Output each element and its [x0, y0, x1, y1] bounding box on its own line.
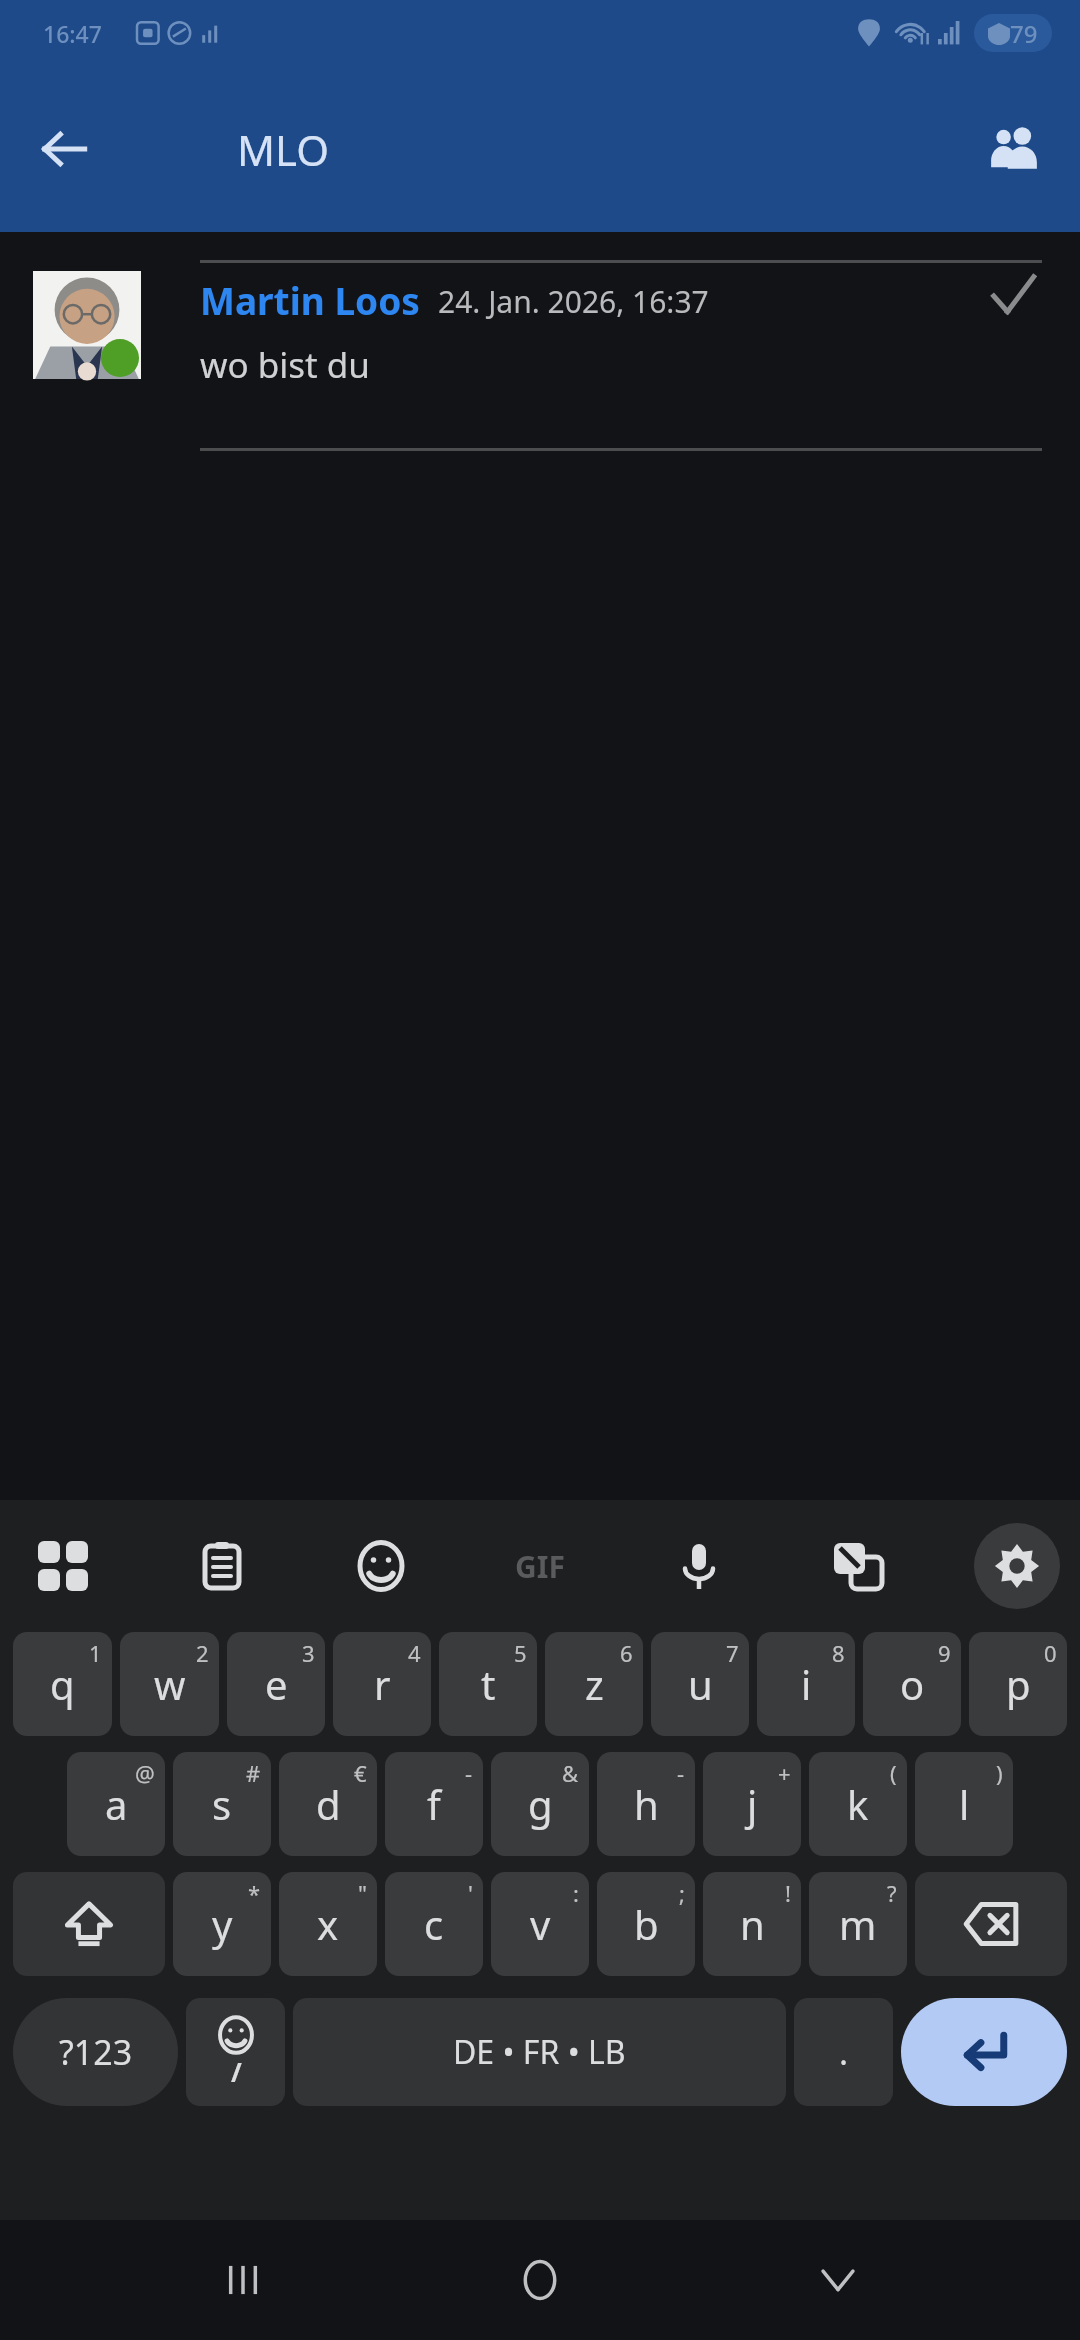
- button[interactable]: Voice input: [656, 1523, 742, 1609]
- staticText: x: [317, 1897, 339, 1951]
- staticText: 2: [196, 1638, 209, 1668]
- staticText: h: [634, 1777, 659, 1831]
- button[interactable]: v: [491, 1872, 589, 1976]
- staticText: 4: [408, 1638, 421, 1668]
- button[interactable]: a: [67, 1752, 165, 1856]
- button[interactable]: o: [863, 1632, 961, 1736]
- button[interactable]: h: [597, 1752, 695, 1856]
- staticText: ": [358, 1878, 367, 1908]
- button[interactable]: [33, 271, 141, 379]
- staticText: 24. Jan. 2026, 16:37: [438, 281, 709, 322]
- staticText: n: [740, 1897, 765, 1951]
- button[interactable]: ?123: [13, 1998, 178, 2106]
- staticText: l: [959, 1777, 970, 1831]
- staticText: wo bist du: [200, 341, 370, 389]
- button[interactable]: w: [120, 1632, 219, 1736]
- staticText: 6: [620, 1638, 633, 1668]
- button[interactable]: k: [809, 1752, 907, 1856]
- staticText: :: [573, 1878, 579, 1908]
- staticText: o: [900, 1657, 925, 1711]
- staticText: k: [847, 1777, 869, 1831]
- button[interactable]: GIF: [497, 1523, 583, 1609]
- button[interactable]: e: [227, 1632, 325, 1736]
- button[interactable]: j: [703, 1752, 801, 1856]
- staticText: y: [212, 1897, 233, 1951]
- button[interactable]: Hide keyboard: [783, 2225, 893, 2335]
- staticText: 0: [1044, 1638, 1057, 1668]
- button[interactable]: f: [385, 1752, 483, 1856]
- staticText: f: [427, 1777, 441, 1831]
- staticText: 7: [726, 1638, 739, 1668]
- button[interactable]: y: [173, 1872, 271, 1976]
- staticText: /: [231, 2054, 242, 2089]
- staticText: q: [50, 1657, 75, 1711]
- button[interactable]: t: [439, 1632, 537, 1736]
- button[interactable]: b: [597, 1872, 695, 1976]
- button[interactable]: m: [809, 1872, 907, 1976]
- button[interactable]: i: [757, 1632, 855, 1736]
- staticText: i: [801, 1657, 812, 1711]
- button[interactable]: u: [651, 1632, 749, 1736]
- staticText: ?: [887, 1878, 897, 1908]
- staticText: MLO: [237, 121, 330, 178]
- button[interactable]: Home: [485, 2225, 595, 2335]
- button[interactable]: n: [703, 1872, 801, 1976]
- button[interactable]: People: [970, 105, 1058, 193]
- button[interactable]: Enter: [901, 1998, 1067, 2106]
- button[interactable]: c: [385, 1872, 483, 1976]
- staticText: 79: [1010, 17, 1038, 50]
- button[interactable]: d: [279, 1752, 377, 1856]
- staticText: GIF: [515, 1546, 565, 1587]
- staticText: €: [354, 1758, 367, 1788]
- staticText: 8: [832, 1638, 845, 1668]
- button[interactable]: g: [491, 1752, 589, 1856]
- button[interactable]: x: [279, 1872, 377, 1976]
- staticText: ?123: [59, 2029, 133, 2075]
- staticText: e: [265, 1657, 288, 1711]
- staticText: s: [212, 1777, 232, 1831]
- button[interactable]: q: [13, 1632, 112, 1736]
- button[interactable]: DE • FR • LB: [293, 1998, 786, 2106]
- button[interactable]: s: [173, 1752, 271, 1856]
- staticText: ;: [679, 1878, 685, 1908]
- staticText: ': [468, 1878, 473, 1908]
- staticText: !: [785, 1878, 791, 1908]
- staticText: b: [634, 1897, 659, 1951]
- button[interactable]: Emoji: [186, 1998, 285, 2106]
- staticText: (: [890, 1758, 897, 1788]
- button[interactable]: z: [545, 1632, 643, 1736]
- button[interactable]: Shift: [13, 1872, 165, 1976]
- staticText: d: [316, 1777, 341, 1831]
- staticText: c: [424, 1897, 444, 1951]
- staticText: #: [246, 1758, 261, 1788]
- button[interactable]: Translate: [815, 1523, 901, 1609]
- staticText: -: [465, 1758, 473, 1788]
- button[interactable]: .: [794, 1998, 893, 2106]
- staticText: 16:47: [43, 18, 102, 49]
- button[interactable]: Backspace: [915, 1872, 1067, 1976]
- staticText: u: [688, 1657, 713, 1711]
- button[interactable]: Keyboard modes: [20, 1523, 106, 1609]
- staticText: 1: [89, 1638, 102, 1668]
- staticText: a: [105, 1777, 128, 1831]
- button[interactable]: p: [969, 1632, 1067, 1736]
- button[interactable]: Settings: [974, 1523, 1060, 1609]
- staticText: j: [747, 1777, 758, 1831]
- staticText: 3: [302, 1638, 315, 1668]
- button[interactable]: Emoji: [338, 1523, 424, 1609]
- staticText: r: [374, 1657, 391, 1711]
- staticText: &: [562, 1758, 579, 1788]
- staticText: @: [135, 1758, 155, 1788]
- staticText: 5: [514, 1638, 527, 1668]
- button[interactable]: Recents: [188, 2225, 298, 2335]
- staticText: g: [528, 1777, 553, 1831]
- staticText: 9: [938, 1638, 951, 1668]
- staticText: m: [839, 1897, 877, 1951]
- button[interactable]: Back: [20, 105, 108, 193]
- button[interactable]: l: [915, 1752, 1013, 1856]
- staticText: v: [530, 1897, 551, 1951]
- button[interactable]: r: [333, 1632, 431, 1736]
- staticText: Martin Loos: [200, 275, 420, 325]
- staticText: t: [481, 1657, 496, 1711]
- button[interactable]: Clipboard: [179, 1523, 265, 1609]
